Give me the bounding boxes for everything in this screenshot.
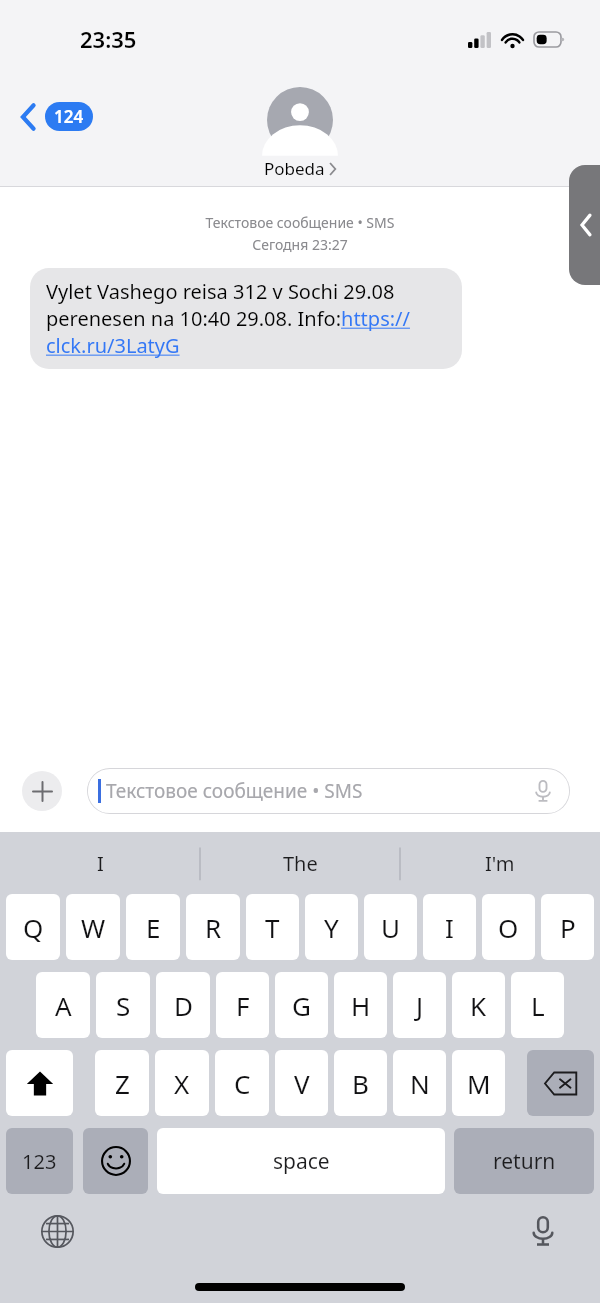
button[interactable]: E (126, 894, 180, 960)
button[interactable]: Change keyboard language (38, 1212, 76, 1250)
button[interactable]: K (452, 972, 505, 1038)
staticText: A (55, 988, 72, 1023)
staticText: N (410, 1066, 430, 1101)
button[interactable]: V (275, 1050, 328, 1116)
button[interactable]: Shift (6, 1050, 73, 1116)
button[interactable]: A (36, 972, 90, 1038)
button[interactable]: D (156, 972, 210, 1038)
staticText: K (470, 988, 487, 1023)
staticText: W (81, 910, 106, 945)
staticText: Сегодня 23:27 (0, 235, 600, 254)
staticText: Y (324, 910, 339, 945)
button[interactable]: Y (305, 894, 358, 960)
button[interactable]: Dictation (524, 1212, 562, 1250)
button[interactable]: return (454, 1128, 594, 1194)
button[interactable]: Q (6, 894, 60, 960)
staticText: B (352, 1066, 369, 1101)
staticText: 123 (22, 1148, 57, 1175)
staticText: 124 (54, 105, 84, 128)
button[interactable]: L (511, 972, 564, 1038)
staticText: X (174, 1066, 190, 1101)
staticText: Текстовое сообщение • SMS (106, 778, 363, 804)
button[interactable]: 123 (6, 1128, 73, 1194)
button[interactable]: N (393, 1050, 446, 1116)
staticText: P (560, 910, 576, 945)
button[interactable]: G (275, 972, 328, 1038)
staticText: Q (23, 910, 44, 945)
staticText: Pobeda (264, 157, 325, 180)
staticText: space (273, 1147, 330, 1176)
staticText: Vylet Vashego reisa 312 v Sochi 29.08 pe… (46, 278, 446, 359)
staticText: S (116, 988, 131, 1023)
button[interactable]: X (155, 1050, 209, 1116)
button[interactable]: O (482, 894, 535, 960)
staticText: U (381, 910, 401, 945)
button[interactable]: I (0, 832, 200, 894)
button[interactable]: Vylet Vashego reisa 312 v Sochi 29.08 pe… (30, 268, 462, 369)
staticText: I (97, 850, 104, 877)
staticText: Текстовое сообщение • SMS (0, 213, 600, 232)
staticText: J (416, 988, 424, 1023)
button[interactable]: I (423, 894, 476, 960)
staticText: F (236, 988, 250, 1023)
staticText: G (292, 988, 311, 1023)
staticText: I (445, 910, 454, 945)
button[interactable]: S (96, 972, 150, 1038)
staticText: V (294, 1066, 310, 1101)
button[interactable]: M (452, 1050, 505, 1116)
button[interactable]: Pobeda (264, 87, 336, 180)
button[interactable]: Emoji (83, 1128, 148, 1194)
staticText: The (283, 850, 318, 877)
staticText: Z (115, 1066, 130, 1101)
button[interactable]: J (393, 972, 446, 1038)
staticText: return (493, 1147, 556, 1176)
button[interactable]: Add attachment (22, 771, 62, 811)
button[interactable]: R (186, 894, 240, 960)
button[interactable]: Backspace (527, 1050, 594, 1116)
button[interactable]: T (246, 894, 299, 960)
button[interactable]: Show sidebar (569, 165, 600, 285)
button[interactable]: space (157, 1128, 445, 1194)
button[interactable]: W (66, 894, 120, 960)
button[interactable]: U (364, 894, 417, 960)
button[interactable]: C (215, 1050, 269, 1116)
staticText: C (234, 1066, 251, 1101)
button[interactable]: I'm (400, 832, 600, 894)
button[interactable]: Текстовое сообщение • SMS (87, 768, 570, 814)
staticText: L (531, 988, 545, 1023)
button[interactable]: B (334, 1050, 387, 1116)
staticText: O (498, 910, 519, 945)
button[interactable]: Dictate (530, 778, 556, 804)
staticText: 23:35 (80, 24, 137, 54)
button[interactable]: P (541, 894, 594, 960)
staticText: M (467, 1066, 491, 1101)
staticText: E (146, 910, 161, 945)
button[interactable]: The (200, 832, 400, 894)
staticText: D (174, 988, 193, 1023)
button[interactable]: Z (95, 1050, 149, 1116)
button[interactable]: Back to 124 conversations (16, 98, 97, 135)
button[interactable]: H (334, 972, 387, 1038)
button[interactable]: F (216, 972, 269, 1038)
staticText: I'm (485, 850, 515, 877)
staticText: H (351, 988, 371, 1023)
staticText: R (205, 910, 222, 945)
staticText: T (265, 910, 280, 945)
